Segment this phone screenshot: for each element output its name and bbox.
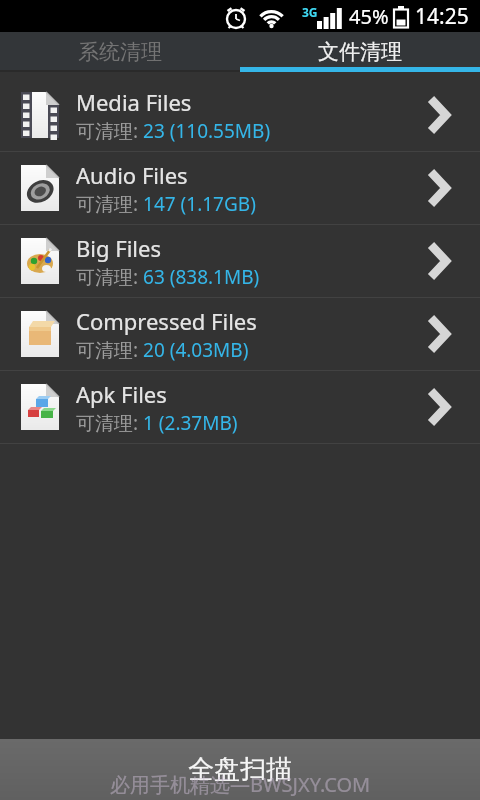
- staticText: 可清理: 147 (1.17GB): [76, 191, 256, 217]
- staticText: 可清理: 63 (838.1MB): [76, 264, 260, 290]
- staticText: Big Files: [76, 233, 161, 263]
- staticText: Compressed Files: [76, 306, 257, 336]
- staticText: 文件清理: [318, 39, 402, 65]
- button[interactable]: 系统清理: [0, 32, 240, 72]
- button[interactable]: 文件清理: [240, 32, 480, 72]
- staticText: 14:25: [415, 2, 469, 31]
- staticText: 45%: [349, 3, 389, 30]
- staticText: 3G: [302, 4, 318, 20]
- button[interactable]: 全盘扫描: [0, 739, 480, 800]
- button[interactable]: Media Files: [0, 79, 480, 152]
- staticText: Apk Files: [76, 379, 167, 409]
- staticText: 可清理: 20 (4.03MB): [76, 337, 249, 363]
- staticText: Media Files: [76, 87, 192, 117]
- staticText: 必用手机精选—BWSJXY.COM: [110, 771, 371, 798]
- button[interactable]: Compressed Files: [0, 298, 480, 371]
- button[interactable]: Big Files: [0, 225, 480, 298]
- button[interactable]: Audio Files: [0, 152, 480, 225]
- staticText: Audio Files: [76, 160, 188, 190]
- staticText: 系统清理: [78, 39, 162, 65]
- button[interactable]: Apk Files: [0, 371, 480, 444]
- staticText: 可清理: 1 (2.37MB): [76, 410, 238, 436]
- staticText: 可清理: 23 (110.55MB): [76, 118, 271, 144]
- staticText: 全盘扫描: [188, 753, 292, 786]
